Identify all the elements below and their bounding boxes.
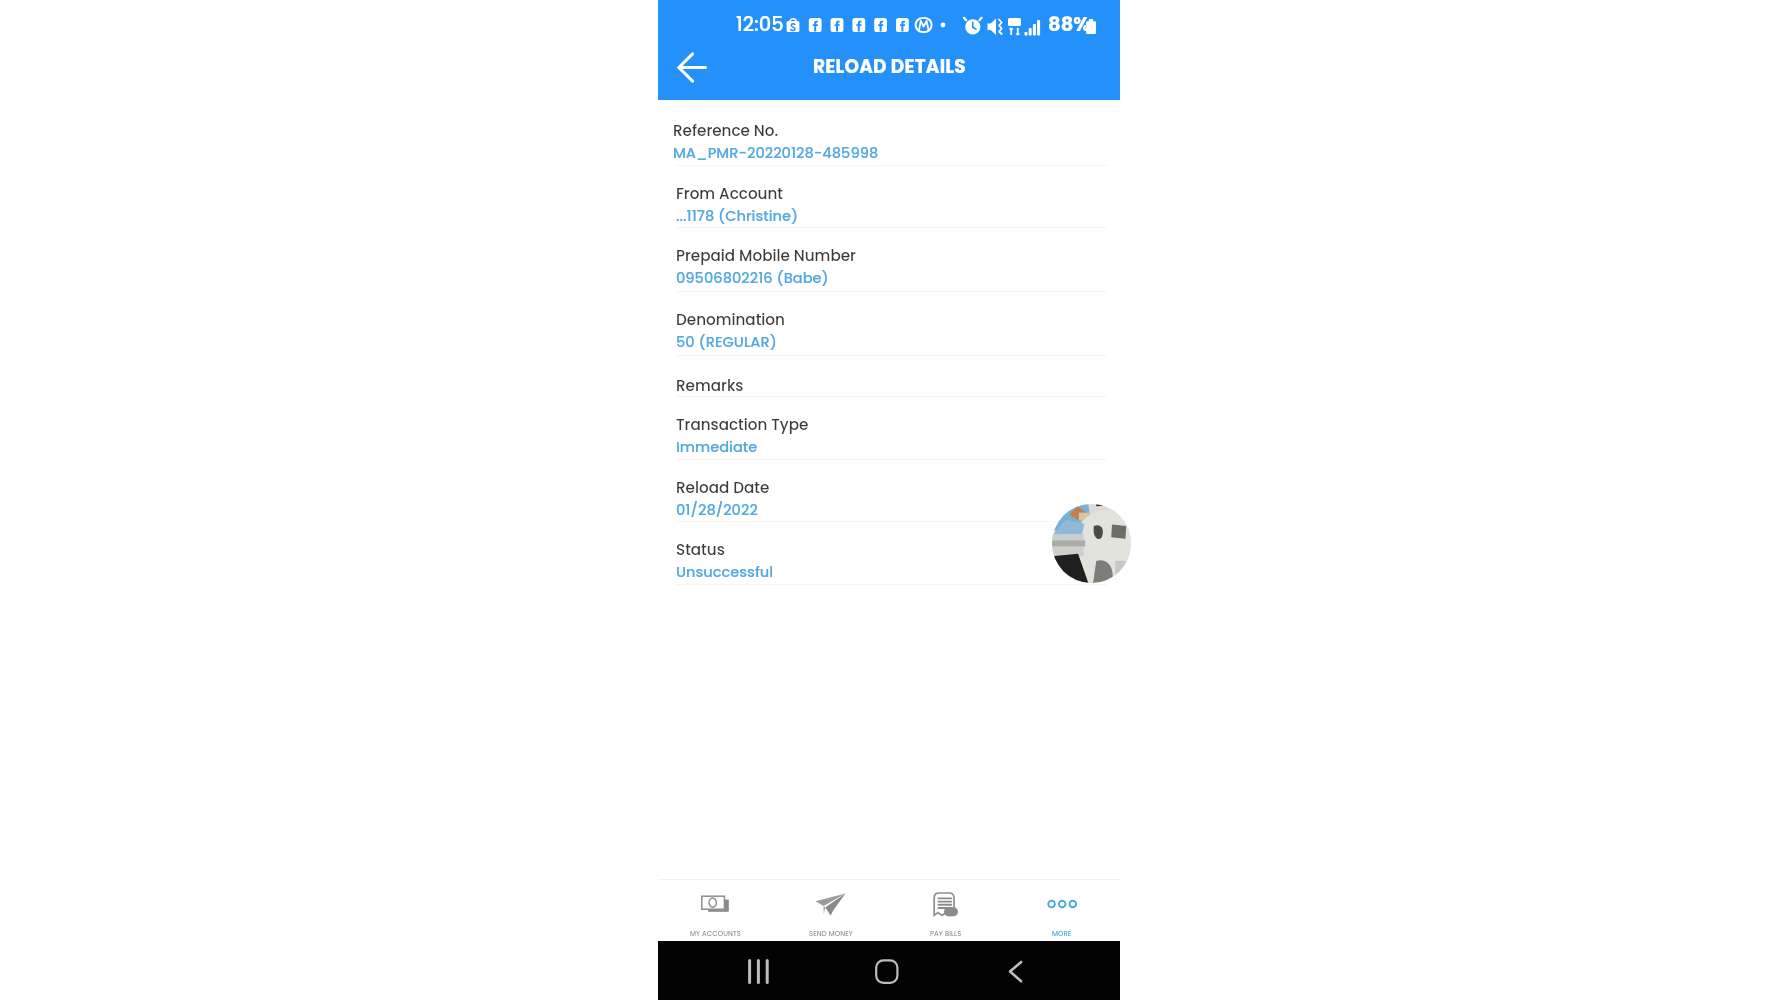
staticText: MA_PMR-20220128-485998	[673, 143, 879, 163]
staticText: RELOAD DETAILS	[813, 54, 966, 80]
button[interactable]: MORE	[1004, 880, 1120, 941]
button[interactable]: Reload Date	[658, 460, 1120, 522]
button[interactable]: MY ACCOUNTS	[658, 880, 773, 941]
staticText: PAY BILLS	[930, 929, 962, 939]
button[interactable]: Reference No.	[658, 100, 1120, 166]
staticText: 88%	[1048, 11, 1091, 38]
staticText: MORE	[1052, 929, 1072, 939]
staticText: Status	[676, 539, 725, 560]
button[interactable]: Denomination	[658, 292, 1120, 356]
button[interactable]: Status	[658, 522, 1120, 585]
staticText: From Account	[676, 183, 783, 204]
staticText: 09506802216 (Babe)	[676, 268, 829, 288]
staticText: Unsuccessful	[676, 562, 774, 582]
button[interactable]: PAY BILLS	[888, 880, 1004, 941]
button[interactable]: SEND MONEY	[773, 880, 888, 941]
staticText: Immediate	[676, 437, 758, 457]
staticText: Reload Date	[676, 477, 770, 498]
staticText: Transaction Type	[676, 414, 809, 435]
button[interactable]: Transaction Type	[658, 397, 1120, 460]
staticText: 01/28/2022	[676, 500, 758, 520]
staticText: ...1178 (Christine)	[676, 206, 799, 226]
staticText: SEND MONEY	[809, 929, 853, 939]
button[interactable]: Back	[670, 45, 714, 89]
staticText: Denomination	[676, 309, 785, 330]
button[interactable]: Profile photo	[1052, 504, 1131, 583]
staticText: Reference No.	[673, 120, 779, 141]
staticText: 50 (REGULAR)	[676, 332, 777, 352]
staticText: Prepaid Mobile Number	[676, 245, 856, 266]
button[interactable]: Remarks	[658, 356, 1120, 397]
staticText: MY ACCOUNTS	[690, 929, 741, 939]
staticText: 12:05	[736, 11, 784, 38]
staticText: Remarks	[676, 375, 744, 396]
button[interactable]: Prepaid Mobile Number	[658, 228, 1120, 292]
button[interactable]: From Account	[658, 166, 1120, 228]
